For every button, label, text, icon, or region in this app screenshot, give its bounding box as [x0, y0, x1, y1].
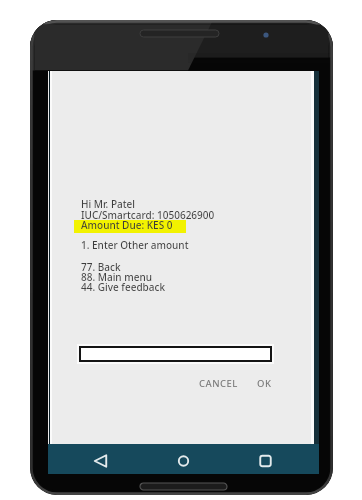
button[interactable]: CANCEL [195, 373, 242, 394]
staticText: IUC/Smartcard: 1050626900 [81, 208, 215, 222]
button[interactable]: OK [253, 373, 276, 394]
button[interactable]: Recent apps [249, 446, 282, 476]
staticText: 44. Give feedback [81, 280, 166, 294]
staticText: 77. Back [81, 260, 121, 274]
staticText: Hi Mr. Patel [81, 197, 135, 211]
staticText: 1. Enter Other amount [81, 238, 189, 252]
button[interactable]: Back [84, 446, 117, 476]
button[interactable]: Home [167, 446, 200, 476]
staticText: Amount Due: KES 0 [81, 218, 173, 232]
staticText: OK [257, 377, 272, 390]
staticText: 88. Main menu [81, 270, 152, 284]
staticText: CANCEL [199, 377, 238, 390]
